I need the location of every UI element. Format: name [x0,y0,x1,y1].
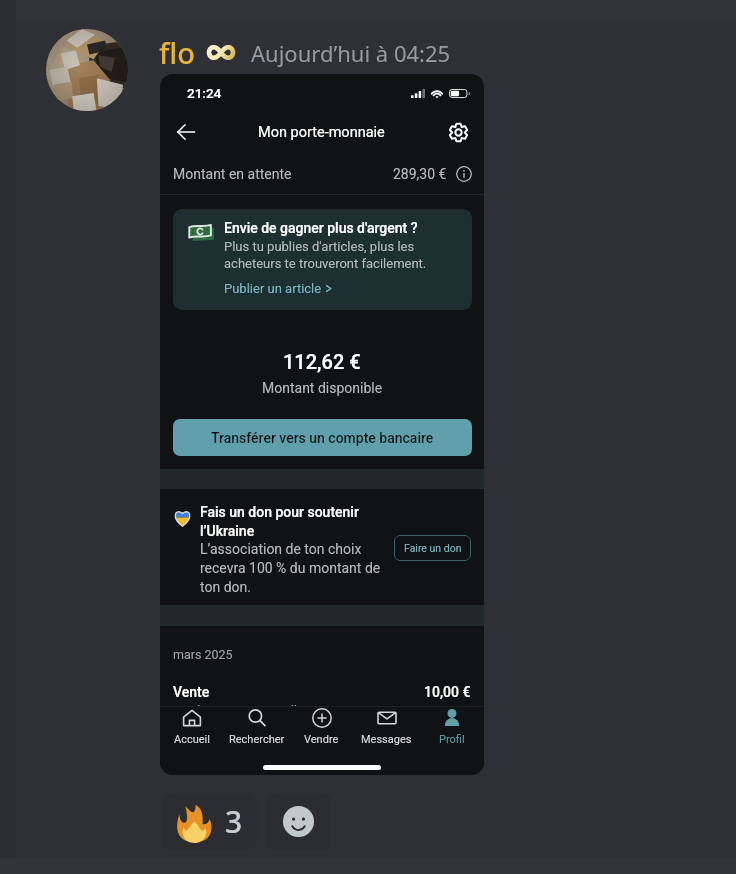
staticText: Rechercher [229,733,285,746]
staticText: Produit : tenue et veille... [173,703,315,718]
button[interactable]: Transférer vers un compte bancaire [173,419,472,456]
button[interactable]: 3 [161,793,257,850]
staticText: Messages [361,733,412,746]
staticText: 112,62 € [283,350,361,373]
button[interactable]: Rechercher [224,708,289,746]
staticText: Envie de gagner plus d'argent ? [224,220,418,236]
staticText: 3 [225,801,243,842]
staticText: Montant en attente [173,166,292,182]
staticText: 10,00 € [424,684,471,700]
staticText: Mon porte-monnaie [258,124,385,141]
staticText: 289,30 € [393,166,447,182]
button[interactable]: Messages [354,708,419,746]
staticText: Transférer vers un compte bancaire [211,430,434,446]
button[interactable]: Vendre [289,708,354,746]
button[interactable]: Envie de gagner plus d'argent ? [173,209,472,310]
button[interactable]: Avatar de flo [46,29,128,111]
button[interactable]: Faire un don [394,535,471,561]
staticText: Fais un don pour soutenir l’Ukraine [200,504,384,539]
button[interactable]: Profil [419,708,484,746]
button[interactable]: Accueil [160,708,224,746]
staticText: Vendre [304,733,339,746]
staticText: Aujourd’hui à 04:25 [251,38,451,68]
staticText: Accueil [174,733,210,746]
staticText: Faire un don [404,542,462,554]
staticText: Profil [439,733,465,746]
button[interactable]: Retour [171,117,201,147]
staticText: Montant disponible [262,380,383,396]
staticText: L’association de ton choix recevra 100 %… [200,541,384,595]
staticText: Publier un article [224,281,322,296]
button[interactable]: Ajouter une réaction [266,793,331,850]
button[interactable]: Publier un article [224,281,332,296]
staticText: Vente [173,684,210,700]
button[interactable]: Montant en attente [160,153,484,194]
staticText: mars 2025 [173,647,233,662]
button[interactable]: Paramètres [443,117,473,147]
staticText: 21:24 [187,85,222,101]
staticText: Plus tu publies d'articles, plus les ach… [224,239,456,272]
button[interactable]: Fais un don pour soutenir l’Ukraine [160,489,484,609]
button[interactable]: flo [159,33,195,72]
